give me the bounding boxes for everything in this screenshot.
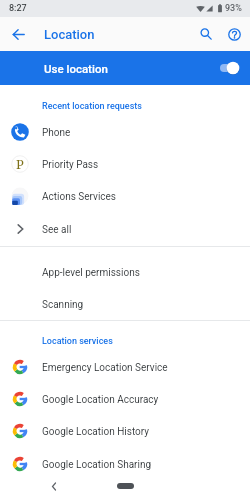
button[interactable]: App-level permissions (0, 256, 250, 288)
button[interactable]: Google Location Sharing (0, 448, 250, 480)
staticText: Recent location requests (42, 101, 142, 112)
staticText: P (16, 155, 24, 173)
staticText: Phone (42, 127, 71, 139)
button[interactable]: Actions Services (0, 180, 250, 212)
staticText: Google Location Sharing (42, 459, 152, 471)
staticText: Google Location History (42, 426, 150, 438)
button[interactable]: Back (8, 24, 28, 44)
staticText: Location services (42, 336, 113, 347)
button[interactable]: Back (46, 478, 62, 494)
staticText: See all (42, 224, 72, 236)
staticText: Emergency Location Service (42, 362, 168, 374)
staticText: 93% (225, 3, 242, 14)
button[interactable]: Home (117, 483, 134, 489)
button[interactable]: Google Location History (0, 415, 250, 447)
staticText: Actions Services (42, 191, 117, 203)
staticText: 8:27 (9, 3, 27, 14)
button[interactable]: Google Location Accuracy (0, 383, 250, 415)
button[interactable]: Use location (0, 51, 250, 85)
staticText: Scanning (42, 299, 84, 311)
staticText: App-level permissions (42, 267, 140, 279)
staticText: Location (44, 27, 95, 42)
staticText: Use location (44, 62, 108, 75)
staticText: Priority Pass (42, 159, 99, 171)
button[interactable]: P (0, 148, 250, 180)
button[interactable]: Help (223, 23, 245, 45)
button[interactable]: Emergency Location Service (0, 351, 250, 383)
button[interactable]: Search (195, 23, 217, 45)
button[interactable]: Scanning (0, 288, 250, 320)
staticText: Google Location Accuracy (42, 394, 159, 406)
button[interactable]: See all (0, 213, 250, 245)
button[interactable]: Phone (0, 116, 250, 148)
